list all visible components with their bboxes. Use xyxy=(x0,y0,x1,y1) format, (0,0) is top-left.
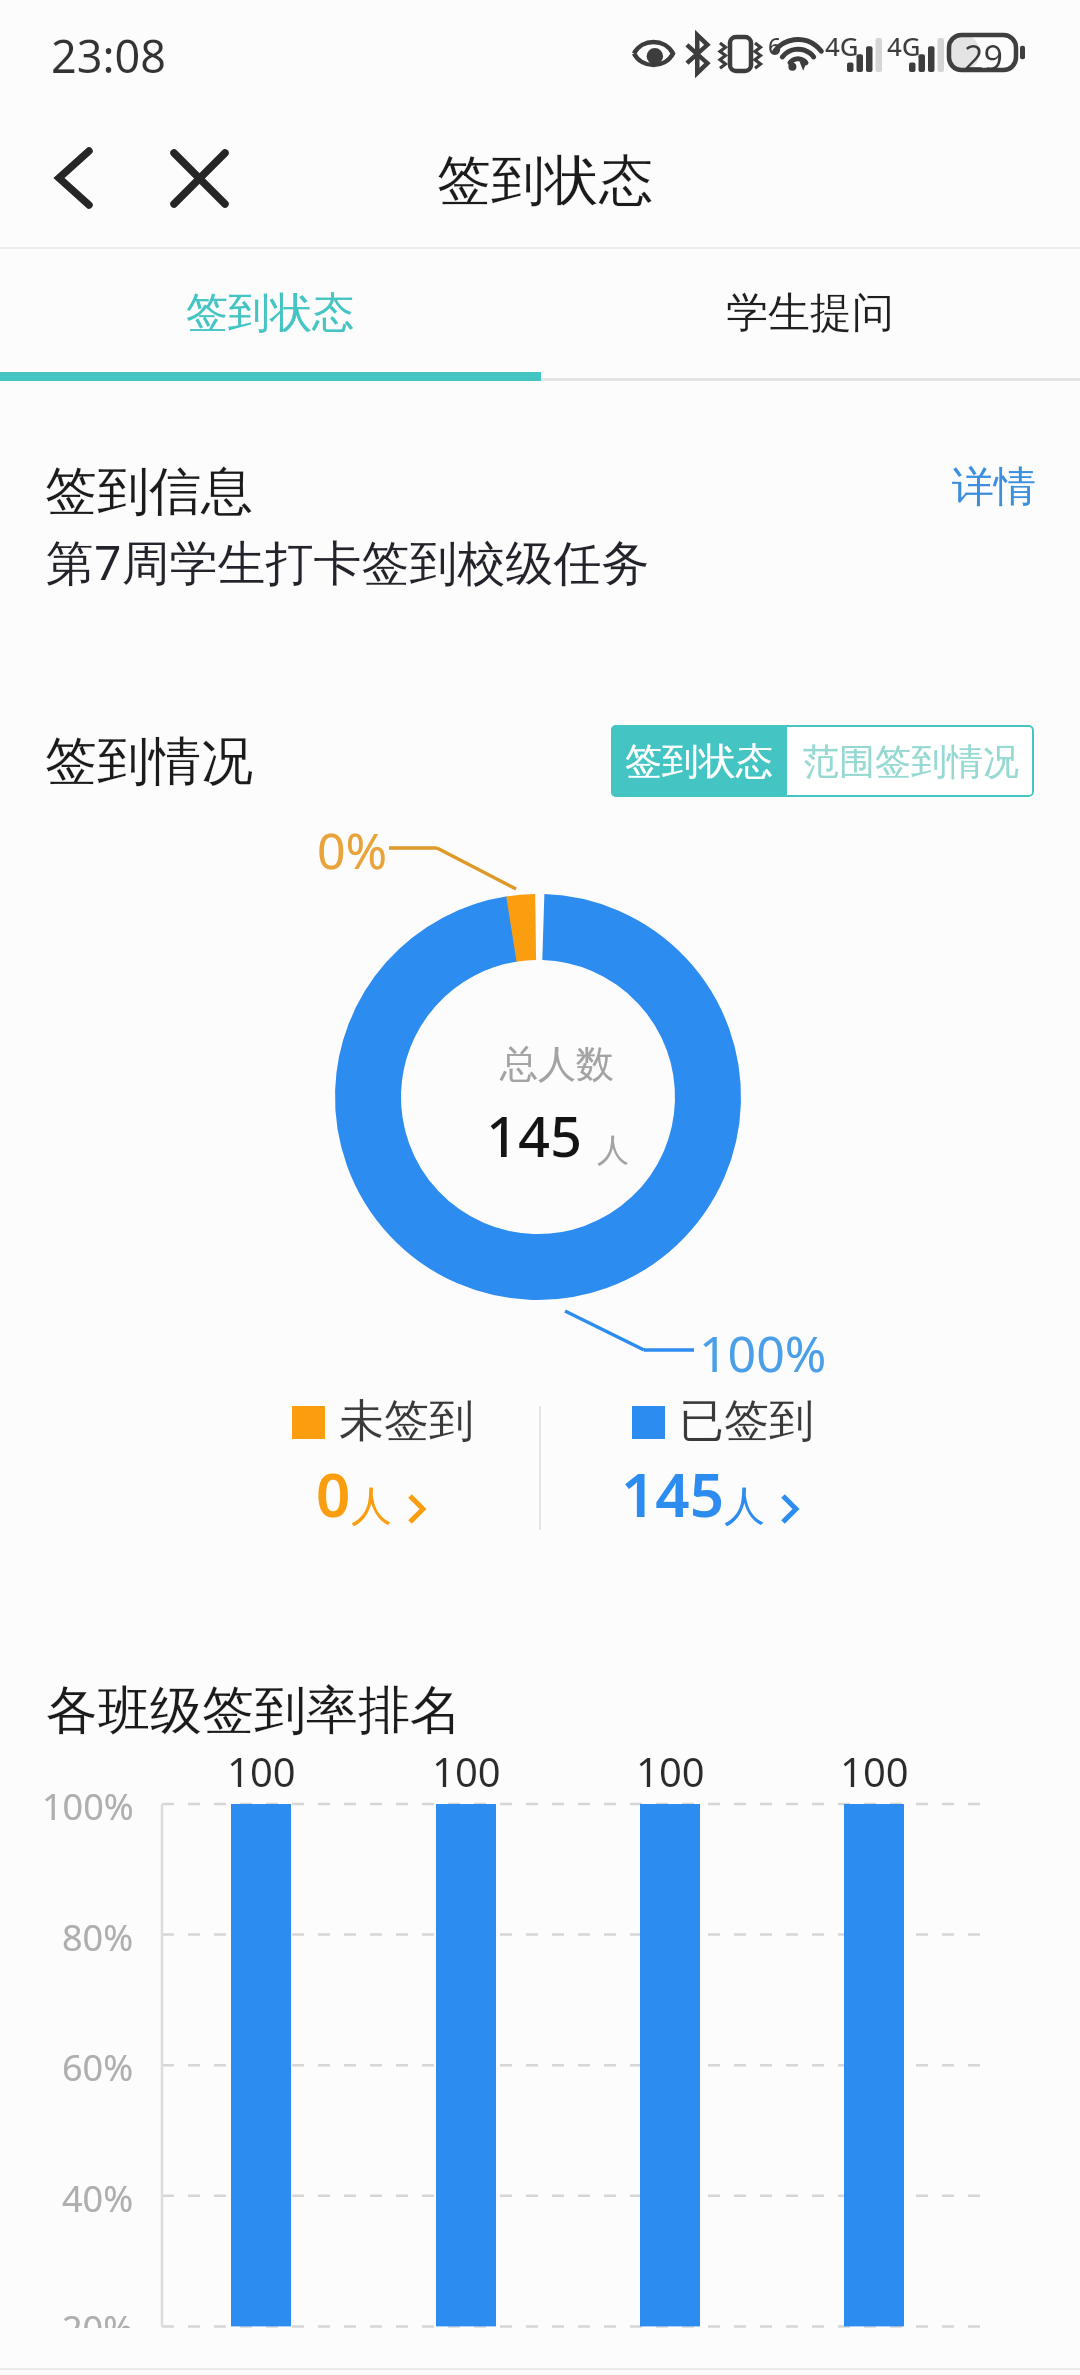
button[interactable]: 145 xyxy=(621,1453,798,1535)
staticText: 100 xyxy=(227,1744,296,1798)
staticText: 100 xyxy=(636,1744,705,1798)
staticText: 第7周学生打卡签到校级任务 xyxy=(46,529,650,595)
staticText: 范围签到情况 xyxy=(803,739,1019,784)
staticText: 各班级签到率排名 xyxy=(46,1678,462,1744)
staticText: 145 xyxy=(486,1097,583,1173)
staticText: 6 xyxy=(768,30,782,61)
staticText: 20% xyxy=(62,2304,134,2328)
staticText: 60% xyxy=(62,2043,134,2092)
staticText: 详情 xyxy=(952,461,1036,514)
button[interactable]: 签到状态 xyxy=(611,725,787,797)
staticText: 4G xyxy=(825,28,859,63)
staticText: 0% xyxy=(317,816,388,884)
staticText: 学生提问 xyxy=(726,287,894,340)
button[interactable]: 学生提问 xyxy=(540,251,1080,375)
staticText: 签到状态 xyxy=(437,147,653,215)
staticText: 人 xyxy=(724,1481,765,1533)
staticText: 签到信息 xyxy=(45,459,253,525)
staticText: 100% xyxy=(699,1319,827,1387)
button[interactable]: 详情 xyxy=(938,451,1050,524)
staticText: 签到情况 xyxy=(45,729,253,795)
staticText: 100 xyxy=(432,1744,501,1798)
button[interactable]: Close xyxy=(149,128,249,228)
staticText: 人 xyxy=(597,1130,629,1170)
staticText: 40% xyxy=(62,2174,134,2223)
staticText: 145 xyxy=(621,1453,724,1535)
staticText: 23:08 xyxy=(51,25,167,86)
staticText: 签到状态 xyxy=(625,738,773,785)
staticText: 0 xyxy=(316,1453,351,1535)
staticText: 4G xyxy=(887,28,921,63)
staticText: 29 xyxy=(964,34,1003,80)
staticText: 80% xyxy=(62,1913,134,1962)
staticText: 未签到 xyxy=(339,1393,474,1450)
staticText: 人 xyxy=(351,1481,392,1533)
staticText: 100% xyxy=(42,1782,134,1831)
button[interactable]: 签到状态 xyxy=(0,251,540,375)
button[interactable]: Back xyxy=(24,128,124,228)
button[interactable]: 未签到 xyxy=(292,1393,474,1450)
staticText: 总人数 xyxy=(500,1040,614,1088)
staticText: 已签到 xyxy=(679,1393,814,1450)
staticText: 100 xyxy=(840,1744,909,1798)
button[interactable]: 已签到 xyxy=(632,1393,814,1450)
staticText: 签到状态 xyxy=(186,287,354,340)
button[interactable]: 0 xyxy=(316,1453,425,1535)
button[interactable]: 范围签到情况 xyxy=(787,725,1034,797)
